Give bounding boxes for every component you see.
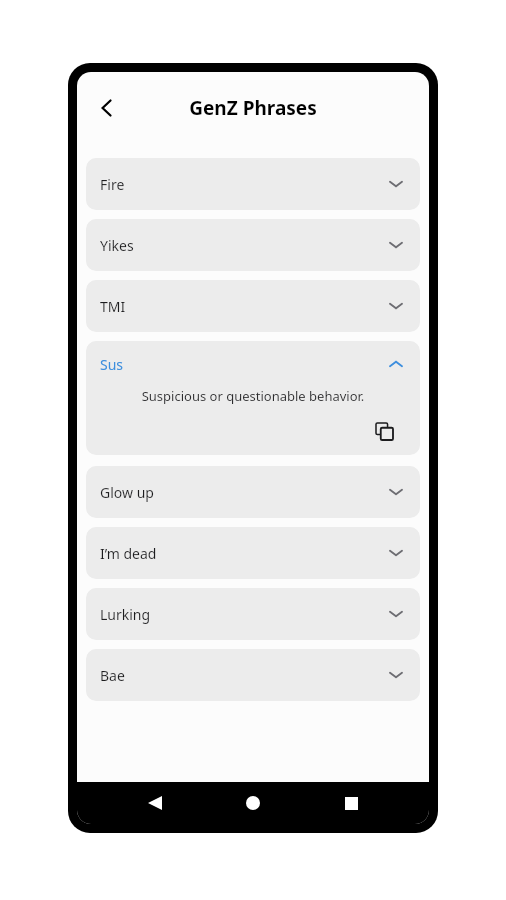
staticText: Fire (100, 175, 386, 194)
button[interactable]: I’m dead (86, 527, 420, 579)
staticText: Yikes (100, 236, 386, 255)
staticText: Sus (100, 355, 386, 374)
button[interactable]: Bae (86, 649, 420, 701)
button[interactable]: Lurking (86, 588, 420, 640)
button[interactable]: Recent apps (331, 783, 371, 823)
staticText: Suspicious or questionable behavior. (102, 387, 404, 405)
button[interactable]: Back (85, 86, 129, 130)
button[interactable]: TMI (86, 280, 420, 332)
button[interactable]: Yikes (86, 219, 420, 271)
button[interactable]: Back (135, 783, 175, 823)
staticText: GenZ Phrases (189, 95, 317, 121)
button[interactable]: Fire (86, 158, 420, 210)
staticText: Bae (100, 666, 386, 685)
staticText: Glow up (100, 483, 386, 502)
button[interactable]: Home (233, 783, 273, 823)
button[interactable]: Glow up (86, 466, 420, 518)
button[interactable]: Copy (370, 417, 398, 445)
staticText: I’m dead (100, 544, 386, 563)
staticText: TMI (100, 297, 386, 316)
staticText: Lurking (100, 605, 386, 624)
button[interactable]: Sus (86, 341, 420, 455)
